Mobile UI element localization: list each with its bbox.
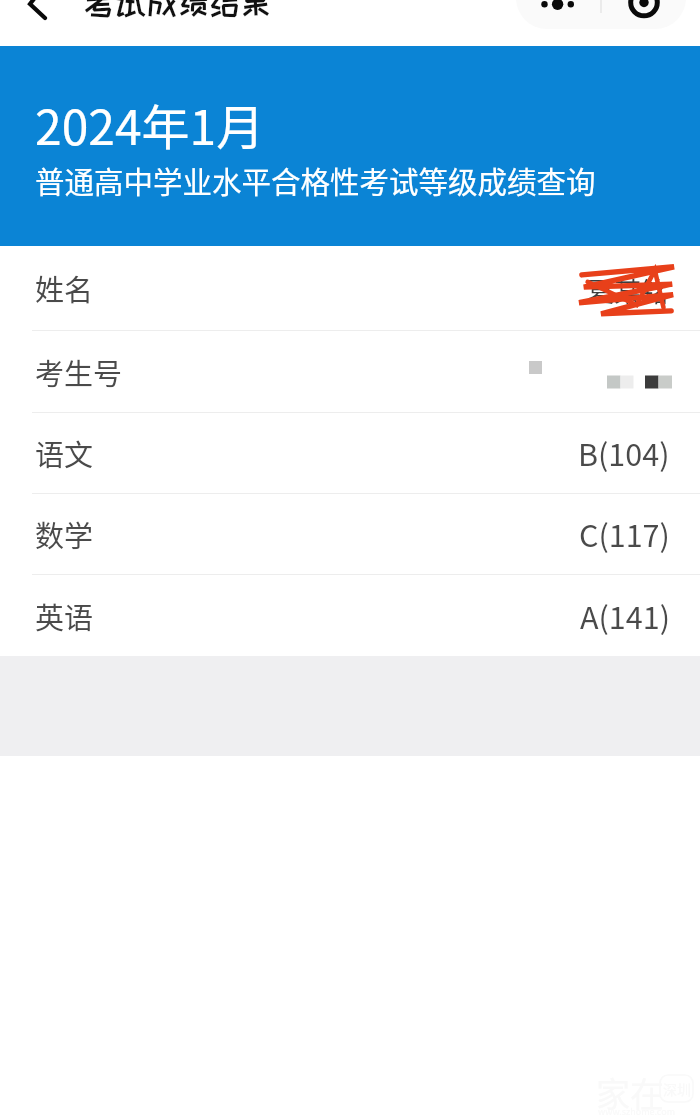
- staticText: 考试成绩结果: [84, 0, 272, 19]
- button[interactable]: Close: [601, 0, 686, 29]
- staticText: 数学: [35, 513, 94, 555]
- staticText: 考生号: [35, 351, 123, 393]
- staticText: 2024年1月: [35, 89, 265, 159]
- button[interactable]: 姓名: [0, 246, 700, 330]
- button[interactable]: 数学: [0, 494, 700, 574]
- button[interactable]: 考生号: [0, 331, 700, 412]
- staticText: 英语: [35, 595, 94, 637]
- button[interactable]: 英语: [0, 575, 700, 656]
- button[interactable]: More options: [516, 0, 601, 29]
- button[interactable]: Back: [8, 0, 64, 24]
- staticText: A(141): [580, 594, 670, 638]
- staticText: C(117): [579, 512, 670, 556]
- staticText: 普通高中学业水平合格性考试等级成绩查询: [35, 159, 596, 202]
- button[interactable]: 语文: [0, 413, 700, 493]
- staticText: B(104): [578, 431, 670, 475]
- staticText: 夏某铭: [587, 271, 668, 310]
- staticText: 语文: [35, 432, 94, 474]
- staticText: 姓名: [35, 267, 94, 309]
